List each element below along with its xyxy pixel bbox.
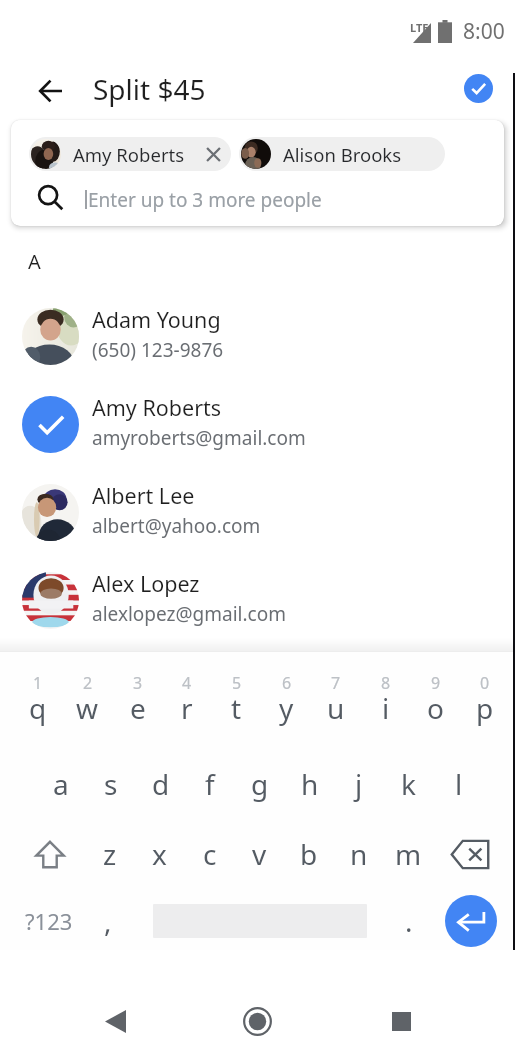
staticText: t bbox=[231, 689, 242, 727]
staticText: Amy Roberts bbox=[73, 142, 185, 167]
staticText: u bbox=[327, 689, 345, 727]
button[interactable]: l bbox=[434, 760, 483, 808]
staticText: Alex Lopez bbox=[92, 569, 200, 598]
staticText: h bbox=[301, 765, 319, 803]
staticText: 1 bbox=[33, 672, 43, 694]
staticText: x bbox=[152, 835, 167, 873]
staticText: s bbox=[104, 765, 118, 803]
staticText: ?123 bbox=[25, 906, 73, 936]
button[interactable]: Backspace bbox=[445, 830, 495, 878]
staticText: . bbox=[405, 902, 413, 940]
staticText: f bbox=[205, 765, 215, 803]
staticText: q bbox=[29, 689, 47, 727]
staticText: 0 bbox=[480, 672, 490, 694]
staticText: i bbox=[382, 689, 390, 727]
button[interactable]: 9 bbox=[411, 658, 460, 720]
button[interactable]: v bbox=[235, 830, 284, 878]
staticText: LTE bbox=[410, 20, 429, 35]
button[interactable]: , bbox=[85, 897, 131, 945]
staticText: 7 bbox=[331, 672, 341, 694]
staticText: amyroberts@gmail.com bbox=[92, 425, 306, 451]
button[interactable]: z bbox=[85, 830, 134, 878]
staticText: j bbox=[355, 765, 363, 803]
button[interactable]: 4 bbox=[162, 658, 211, 720]
staticText: g bbox=[251, 765, 269, 803]
staticText: n bbox=[350, 835, 368, 873]
staticText: 8 bbox=[381, 672, 391, 694]
staticText: d bbox=[152, 765, 170, 803]
button[interactable]: 1 bbox=[13, 658, 62, 720]
button[interactable]: n bbox=[334, 830, 383, 878]
button[interactable]: 2 bbox=[63, 658, 112, 720]
staticText: r bbox=[181, 689, 193, 727]
staticText: Alison Brooks bbox=[283, 142, 402, 167]
staticText: v bbox=[252, 835, 267, 873]
button[interactable]: h bbox=[285, 760, 334, 808]
staticText: e bbox=[130, 689, 146, 727]
button[interactable]: Shift bbox=[25, 830, 75, 878]
staticText: Amy Roberts bbox=[92, 393, 222, 422]
button[interactable]: Amy Roberts bbox=[0, 380, 515, 468]
button[interactable]: s bbox=[86, 760, 135, 808]
staticText: Adam Young bbox=[92, 305, 221, 334]
button[interactable]: j bbox=[334, 760, 383, 808]
staticText: Enter up to 3 more people bbox=[88, 187, 322, 213]
button[interactable]: Recents bbox=[372, 992, 430, 1050]
staticText: 6 bbox=[282, 672, 292, 694]
staticText: , bbox=[104, 902, 112, 940]
button[interactable]: 3 bbox=[113, 658, 162, 720]
button[interactable]: x bbox=[135, 830, 184, 878]
button[interactable]: ?123 bbox=[13, 897, 85, 945]
staticText: Split $45 bbox=[93, 70, 206, 108]
button[interactable]: 8 bbox=[361, 658, 410, 720]
staticText: a bbox=[53, 765, 69, 803]
staticText: alexlopez@gmail.com bbox=[92, 601, 286, 627]
button[interactable]: d bbox=[136, 760, 185, 808]
staticText: (650) 123-9876 bbox=[92, 337, 224, 363]
button[interactable]: Back bbox=[27, 68, 73, 114]
staticText: w bbox=[76, 689, 99, 727]
button[interactable]: . bbox=[388, 897, 430, 945]
button[interactable]: k bbox=[384, 760, 433, 808]
staticText: 2 bbox=[83, 672, 93, 694]
staticText: k bbox=[401, 765, 416, 803]
button[interactable]: b bbox=[284, 830, 333, 878]
button[interactable]: Back bbox=[86, 992, 144, 1050]
staticText: 5 bbox=[232, 672, 242, 694]
button[interactable]: Amy Roberts bbox=[29, 137, 231, 171]
staticText: p bbox=[476, 689, 494, 727]
button[interactable]: a bbox=[36, 760, 85, 808]
staticText: Albert Lee bbox=[92, 481, 195, 510]
staticText: o bbox=[427, 689, 444, 727]
button[interactable]: Home bbox=[228, 992, 286, 1050]
staticText: 9 bbox=[431, 672, 441, 694]
button[interactable]: 0 bbox=[460, 658, 509, 720]
button[interactable]: 5 bbox=[212, 658, 261, 720]
button[interactable]: Confirm bbox=[456, 66, 500, 110]
button[interactable]: 7 bbox=[311, 658, 360, 720]
staticText: z bbox=[103, 835, 117, 873]
button[interactable]: Albert Lee bbox=[0, 468, 515, 556]
button[interactable]: m bbox=[384, 830, 433, 878]
button[interactable]: Enter bbox=[440, 890, 502, 952]
staticText: 8:00 bbox=[463, 17, 505, 46]
button[interactable]: c bbox=[185, 830, 234, 878]
button[interactable]: 6 bbox=[262, 658, 311, 720]
staticText: 4 bbox=[182, 672, 192, 694]
button[interactable]: Space bbox=[133, 897, 387, 945]
staticText: y bbox=[279, 689, 294, 727]
staticText: 3 bbox=[133, 672, 143, 694]
staticText: l bbox=[455, 765, 463, 803]
staticText: A bbox=[28, 248, 41, 275]
button[interactable]: f bbox=[185, 760, 234, 808]
staticText: m bbox=[395, 835, 422, 873]
staticText: albert@yahoo.com bbox=[92, 513, 261, 539]
button[interactable]: Alex Lopez bbox=[0, 556, 515, 644]
staticText: b bbox=[300, 835, 318, 873]
button[interactable]: g bbox=[235, 760, 284, 808]
button[interactable]: Alison Brooks bbox=[239, 137, 445, 171]
button[interactable]: Adam Young bbox=[0, 292, 515, 380]
staticText: c bbox=[203, 835, 217, 873]
